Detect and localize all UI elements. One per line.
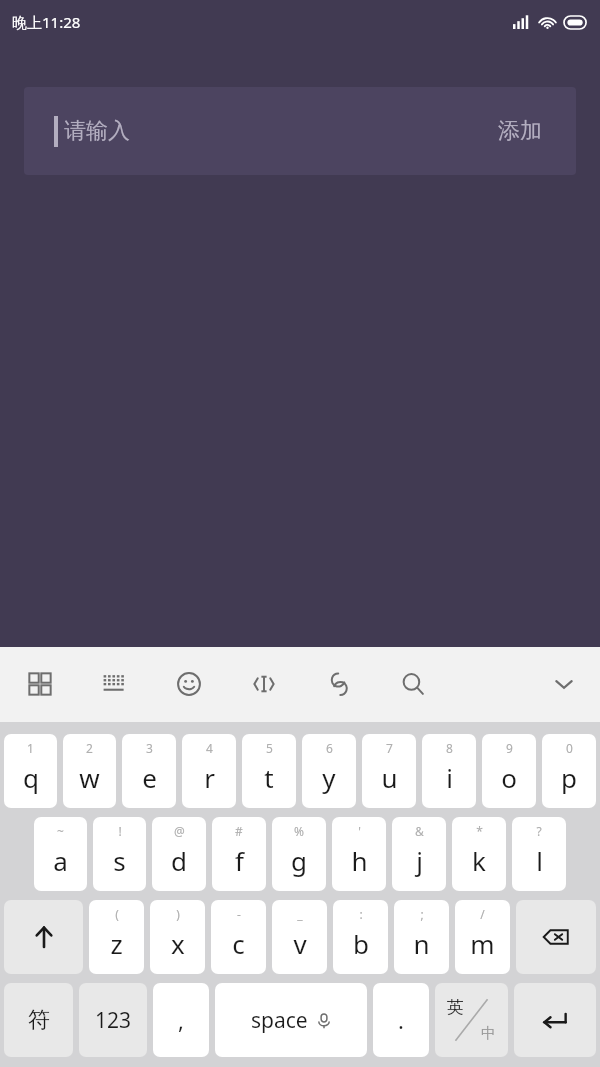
staticText: ' <box>358 823 361 839</box>
button[interactable]: 4 <box>182 734 236 808</box>
staticText: b <box>353 926 369 961</box>
staticText: 2 <box>86 740 93 756</box>
staticText: ; <box>420 906 424 922</box>
staticText: 6 <box>326 740 333 756</box>
button[interactable]: . <box>373 983 429 1057</box>
staticText: k <box>472 843 486 878</box>
button[interactable]: ( <box>89 900 144 974</box>
button[interactable]: Panels <box>18 662 62 706</box>
staticText: 请输入 <box>64 117 130 145</box>
staticText: i <box>446 760 453 795</box>
staticText: ? <box>536 823 542 839</box>
button[interactable]: & <box>392 817 446 891</box>
button[interactable]: 2 <box>63 734 116 808</box>
staticText: 1 <box>27 740 34 756</box>
staticText: 9 <box>506 740 513 756</box>
staticText: 123 <box>95 1006 132 1035</box>
staticText: a <box>53 843 68 878</box>
staticText: l <box>536 843 543 878</box>
staticText: 7 <box>386 740 393 756</box>
button[interactable]: 请输入 <box>24 87 576 175</box>
staticText: @ <box>174 823 185 839</box>
staticText: * <box>476 823 483 839</box>
button[interactable]: # <box>212 817 266 891</box>
button[interactable]: Keyboard layout <box>92 662 136 706</box>
staticText: w <box>79 760 100 795</box>
staticText: x <box>171 926 185 961</box>
button[interactable]: 7 <box>362 734 416 808</box>
button[interactable]: ; <box>394 900 449 974</box>
button[interactable]: Backspace <box>516 900 596 974</box>
staticText: , <box>178 1005 184 1035</box>
staticText: 4 <box>206 740 213 756</box>
button[interactable]: Hide keyboard <box>542 662 586 706</box>
staticText: p <box>561 760 577 795</box>
staticText: m <box>470 926 495 961</box>
button[interactable]: @ <box>152 817 206 891</box>
button[interactable]: 123 <box>79 983 147 1057</box>
staticText: 中 <box>481 1024 496 1043</box>
staticText: 5 <box>266 740 273 756</box>
button[interactable]: Search <box>391 662 435 706</box>
staticText: ) <box>176 906 180 922</box>
button[interactable]: : <box>333 900 388 974</box>
button[interactable]: 3 <box>122 734 176 808</box>
button[interactable]: Emoji <box>167 662 211 706</box>
staticText: g <box>291 843 307 878</box>
button[interactable]: / <box>455 900 510 974</box>
button[interactable]: % <box>272 817 326 891</box>
staticText: 0 <box>566 740 573 756</box>
button[interactable]: ' <box>332 817 386 891</box>
staticText: _ <box>297 906 303 922</box>
staticText: 3 <box>146 740 153 756</box>
button[interactable]: ! <box>93 817 146 891</box>
button[interactable]: 9 <box>482 734 536 808</box>
staticText: / <box>480 906 485 922</box>
staticText: . <box>398 1005 404 1035</box>
button[interactable]: ) <box>150 900 205 974</box>
button[interactable]: 0 <box>542 734 596 808</box>
button[interactable]: * <box>452 817 506 891</box>
staticText: j <box>416 843 423 878</box>
staticText: r <box>204 760 215 795</box>
button[interactable]: 5 <box>242 734 296 808</box>
staticText: 添加 <box>498 117 542 145</box>
button[interactable]: Cursor <box>242 662 286 706</box>
button[interactable]: Switch English Chinese <box>435 983 508 1057</box>
button[interactable]: _ <box>272 900 327 974</box>
button[interactable]: space <box>215 983 367 1057</box>
staticText: # <box>235 823 243 839</box>
staticText: v <box>293 926 307 961</box>
staticText: t <box>264 760 274 795</box>
button[interactable]: Shift <box>4 900 83 974</box>
staticText: c <box>232 926 245 961</box>
staticText: h <box>351 843 368 878</box>
button[interactable]: 添加 <box>494 113 546 149</box>
button[interactable]: , <box>153 983 209 1057</box>
staticText: n <box>413 926 430 961</box>
button[interactable]: Enter <box>514 983 596 1057</box>
button[interactable]: 8 <box>422 734 476 808</box>
button[interactable]: 符 <box>4 983 73 1057</box>
button[interactable]: Clipboard <box>317 662 361 706</box>
button[interactable]: 1 <box>4 734 57 808</box>
staticText: - <box>237 906 241 922</box>
staticText: f <box>235 843 244 878</box>
staticText: y <box>322 760 336 795</box>
staticText: d <box>171 843 187 878</box>
button[interactable]: 6 <box>302 734 356 808</box>
staticText: 英 <box>447 997 464 1018</box>
staticText: e <box>142 760 157 795</box>
staticText: ( <box>115 906 119 922</box>
staticText: q <box>23 760 39 795</box>
staticText: & <box>415 823 424 839</box>
staticText: ~ <box>57 823 64 839</box>
button[interactable]: ? <box>512 817 566 891</box>
staticText: z <box>110 926 123 961</box>
staticText: 符 <box>28 1006 50 1034</box>
staticText: 8 <box>446 740 453 756</box>
staticText: s <box>113 843 126 878</box>
button[interactable]: - <box>211 900 266 974</box>
button[interactable]: ~ <box>34 817 87 891</box>
staticText: ! <box>118 823 122 839</box>
